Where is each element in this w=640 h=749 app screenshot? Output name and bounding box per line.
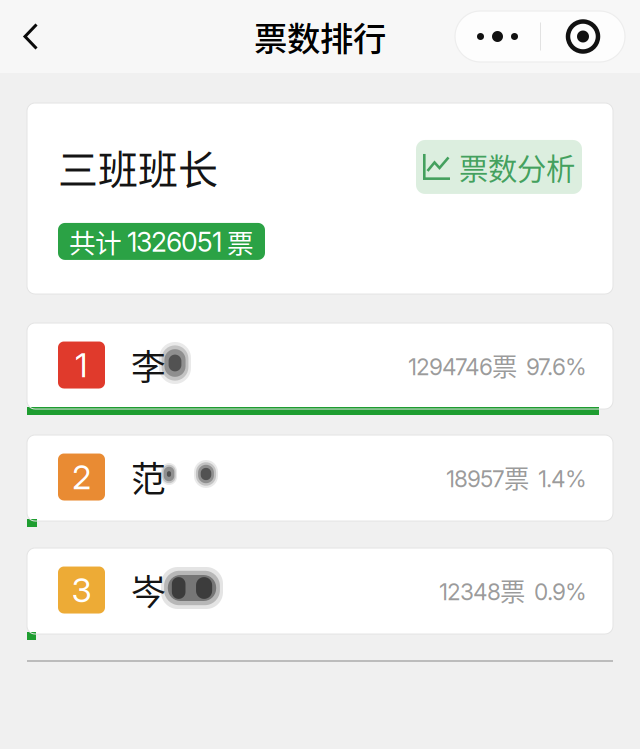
- button[interactable]: 2: [27, 435, 613, 521]
- button[interactable]: 更多: [455, 11, 540, 62]
- staticText: 李: [131, 340, 166, 390]
- staticText: 12348票 0.9%: [439, 572, 587, 608]
- staticText: 18957票 1.4%: [446, 459, 587, 495]
- staticText: 三班班长: [58, 138, 218, 196]
- staticText: 票数分析: [459, 146, 575, 188]
- staticText: 2: [72, 457, 91, 497]
- button[interactable]: 票数分析: [416, 140, 582, 194]
- button[interactable]: 关闭: [541, 11, 625, 62]
- staticText: 岑: [131, 565, 166, 615]
- staticText: 1294746票 97.6%: [408, 347, 587, 383]
- button[interactable]: 返回: [0, 5, 62, 67]
- button[interactable]: 3: [27, 548, 613, 634]
- staticText: 范: [131, 452, 166, 502]
- staticText: 1: [75, 345, 88, 385]
- button[interactable]: 1: [27, 323, 613, 409]
- staticText: 票数排行: [254, 12, 386, 61]
- staticText: 3: [71, 570, 91, 610]
- staticText: 共计 1326051 票: [69, 223, 254, 260]
